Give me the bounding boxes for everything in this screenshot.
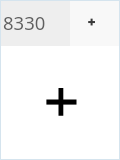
button[interactable]: 8330 <box>1 1 70 46</box>
button[interactable]: Add item <box>38 80 86 128</box>
staticText: 8330 <box>3 10 46 35</box>
button[interactable]: Add <box>70 1 119 46</box>
